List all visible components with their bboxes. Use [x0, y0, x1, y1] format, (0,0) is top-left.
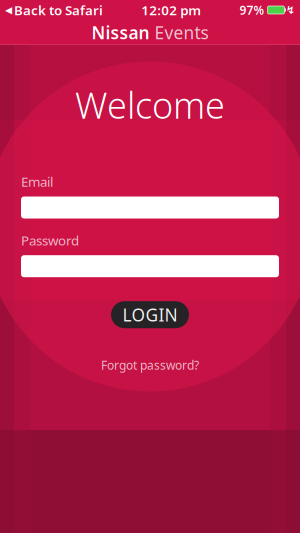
button[interactable]: LOGIN	[111, 301, 189, 328]
staticText: 97%	[239, 2, 264, 18]
staticText: Nissan	[91, 21, 149, 44]
staticText: Events	[149, 21, 208, 44]
staticText: Back to Safari	[14, 1, 103, 19]
staticText: LOGIN	[122, 303, 177, 326]
button[interactable]: Back to Safari	[5, 1, 103, 19]
button[interactable]	[21, 255, 279, 277]
staticText: ↯	[286, 4, 295, 16]
button[interactable]	[21, 196, 279, 218]
staticText: Welcome	[75, 81, 225, 129]
staticText: 12:02 pm	[141, 1, 201, 19]
button[interactable]: Forgot password?	[91, 353, 209, 377]
staticText: ◀	[5, 5, 12, 15]
staticText: Password	[21, 231, 79, 249]
staticText: Email	[21, 173, 53, 190]
staticText: Forgot password?	[101, 357, 199, 373]
